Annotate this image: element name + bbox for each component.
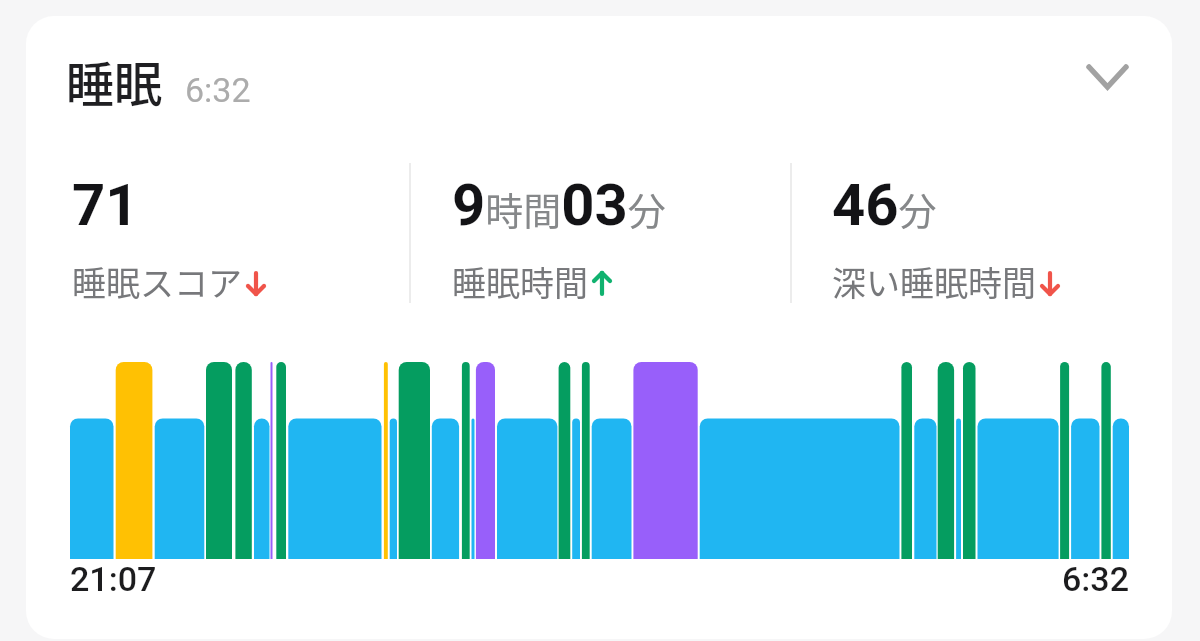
staticText: 睡眠スコア — [72, 257, 242, 306]
button[interactable]: 深い睡眠時間 — [832, 257, 1061, 306]
button[interactable]: 睡眠スコア — [72, 257, 267, 306]
staticText: 9時間03分 — [452, 171, 666, 239]
staticText: 6:32 — [185, 70, 251, 110]
staticText: 睡眠 — [66, 46, 163, 116]
staticText: 46分 — [832, 171, 937, 239]
staticText: 深い睡眠時間 — [832, 257, 1036, 306]
staticText: 6:32 — [1062, 559, 1129, 599]
staticText: 71 — [72, 171, 139, 239]
button[interactable] — [1077, 54, 1137, 100]
button[interactable]: 睡眠時間 — [452, 257, 613, 306]
staticText: 21:07 — [70, 559, 157, 599]
staticText: 睡眠時間 — [452, 257, 588, 306]
button[interactable] — [26, 16, 1172, 639]
